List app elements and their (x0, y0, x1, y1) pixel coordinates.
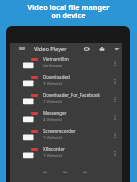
button[interactable]: Screenrecorder (10, 126, 122, 144)
button[interactable]: Folder options (110, 108, 120, 126)
staticText: Downloaded (43, 74, 70, 80)
staticText: 1 Video(s) (43, 153, 63, 159)
staticText: trinhxuan (43, 63, 63, 69)
button[interactable]: Folder options (110, 90, 120, 108)
button[interactable]: Messenger (10, 108, 122, 126)
staticText: XRecorder (43, 146, 65, 152)
staticText: 1 Video(s) (43, 135, 63, 141)
staticText: 3 Video(s) (43, 81, 63, 87)
staticText: Messenger (43, 110, 67, 116)
button[interactable]: Folder options (110, 54, 120, 72)
button[interactable]: Downloaded (10, 72, 122, 90)
staticText: Video Player (34, 45, 67, 53)
button[interactable]: Open navigation menu (17, 44, 26, 53)
button[interactable]: XRecorder (10, 144, 122, 162)
staticText: Downloader_For_Facebook (43, 92, 100, 98)
button[interactable]: Folder options (110, 144, 120, 162)
button[interactable]: Folder options (110, 72, 120, 90)
staticText: 4 Video(s) (43, 117, 63, 123)
button[interactable]: More options (112, 44, 121, 53)
button[interactable]: My videos (97, 44, 106, 53)
button[interactable]: Cast screen (82, 44, 91, 53)
button[interactable]: Downloader_For_Facebook (10, 90, 122, 108)
button[interactable]: Recents (80, 167, 89, 176)
staticText: Vietnamfilm (43, 56, 69, 62)
button[interactable]: Vietnamfilm (10, 54, 122, 72)
staticText: 1 Video(s) (43, 99, 63, 105)
button[interactable]: Folder options (110, 126, 120, 144)
button[interactable]: Home (60, 167, 69, 176)
staticText: on device (0, 10, 137, 20)
button[interactable]: Back (40, 167, 49, 176)
staticText: Screenrecorder (43, 128, 76, 134)
staticText: Video local file manger (0, 2, 137, 12)
